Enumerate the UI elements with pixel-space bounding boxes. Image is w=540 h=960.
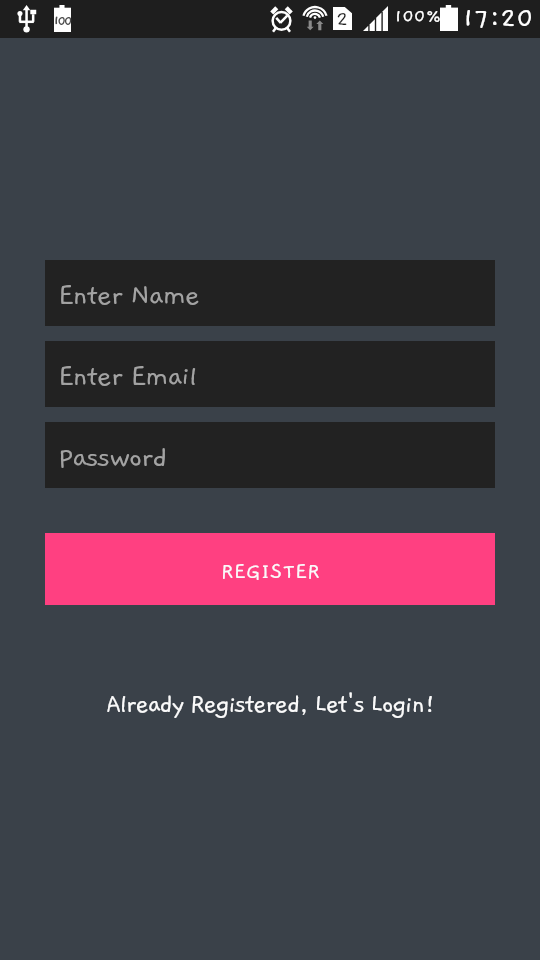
staticText: 17:20 (462, 3, 535, 34)
other: Wi-Fi connected (303, 5, 327, 31)
staticText: 100% (394, 6, 442, 27)
button[interactable]: Password (45, 422, 495, 488)
staticText: Enter Name (58, 280, 200, 312)
staticText: 2 (336, 8, 349, 31)
staticText: Already Registered, Let's Login! (106, 691, 435, 719)
button[interactable]: Enter Name (45, 260, 495, 326)
staticText: Password (58, 442, 167, 474)
other: Alarm set (269, 6, 294, 32)
staticText: Enter Email (58, 361, 197, 393)
staticText: 100 (53, 13, 71, 29)
other: SIM 2 (333, 7, 352, 30)
other: Mobile signal full (363, 6, 388, 31)
other: USB connected (16, 5, 38, 33)
other: Battery 100 percent (44, 5, 81, 32)
button[interactable]: Already Registered, Let's Login! (0, 686, 540, 724)
other: Battery full (440, 5, 458, 31)
button[interactable]: REGISTER (45, 533, 495, 605)
button[interactable]: Enter Email (45, 341, 495, 407)
staticText: REGISTER (221, 560, 320, 584)
